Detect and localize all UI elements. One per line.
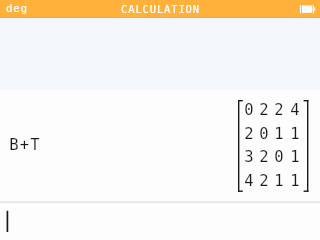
staticText: 3 bbox=[244, 148, 254, 166]
staticText: 1 bbox=[290, 148, 300, 166]
staticText: 2 bbox=[259, 148, 269, 166]
staticText: 0 bbox=[274, 148, 284, 166]
staticText: 4 bbox=[244, 172, 254, 190]
button[interactable]: Battery bbox=[298, 3, 316, 15]
button[interactable]: B+T bbox=[0, 90, 320, 201]
staticText: 1 bbox=[274, 172, 284, 190]
staticText: 0 bbox=[259, 125, 269, 143]
staticText: CALCULATION bbox=[121, 3, 200, 15]
staticText: deg bbox=[6, 2, 28, 14]
staticText: 2 bbox=[274, 101, 284, 119]
staticText: 2 bbox=[244, 125, 254, 143]
staticText: 0 bbox=[244, 101, 254, 119]
staticText: 1 bbox=[290, 125, 300, 143]
button[interactable]: Expression input bbox=[0, 203, 320, 240]
staticText: 1 bbox=[274, 125, 284, 143]
staticText: 1 bbox=[290, 172, 300, 190]
staticText: 4 bbox=[290, 101, 300, 119]
staticText: 2 bbox=[259, 172, 269, 190]
button[interactable]: deg bbox=[6, 0, 30, 17]
staticText: 2 bbox=[259, 101, 269, 119]
staticText: B+T bbox=[9, 136, 41, 154]
